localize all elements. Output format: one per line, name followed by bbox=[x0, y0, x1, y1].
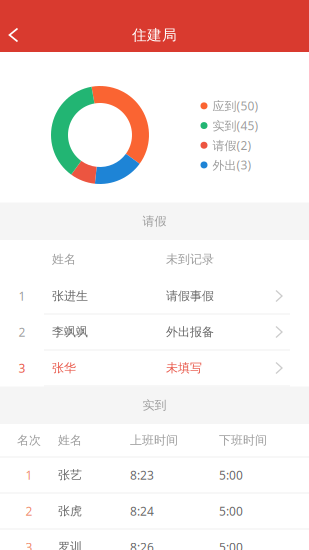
staticText: 请假(2) bbox=[212, 137, 251, 153]
staticText: 名次 bbox=[17, 433, 41, 448]
staticText: 下班时间 bbox=[219, 433, 267, 448]
staticText: 外出报备 bbox=[166, 325, 214, 339]
button[interactable]: 3 bbox=[0, 350, 309, 385]
staticText: 未填写 bbox=[166, 361, 202, 375]
staticText: 2 bbox=[18, 324, 25, 340]
staticText: 5:00 bbox=[219, 467, 243, 483]
staticText: 张进生 bbox=[52, 289, 88, 303]
staticText: 5:00 bbox=[219, 539, 243, 550]
staticText: 未到记录 bbox=[166, 252, 214, 267]
staticText: 应到(50) bbox=[212, 98, 258, 114]
button[interactable]: Back bbox=[0, 18, 27, 52]
staticText: 姓名 bbox=[58, 433, 82, 448]
staticText: 8:24 bbox=[130, 503, 154, 519]
staticText: 姓名 bbox=[52, 252, 76, 267]
staticText: 李飒飒 bbox=[52, 325, 88, 339]
staticText: 8:23 bbox=[130, 467, 154, 483]
staticText: 1 bbox=[25, 467, 32, 483]
staticText: 3 bbox=[25, 539, 32, 550]
button[interactable]: 1 bbox=[0, 278, 309, 313]
staticText: 张虎 bbox=[58, 504, 82, 518]
staticText: 罗训 bbox=[58, 540, 82, 550]
staticText: 2 bbox=[25, 503, 32, 519]
staticText: 张艺 bbox=[58, 468, 82, 482]
staticText: 3 bbox=[18, 360, 25, 376]
staticText: 1 bbox=[18, 288, 25, 304]
staticText: 8:26 bbox=[130, 539, 154, 550]
staticText: 上班时间 bbox=[130, 433, 178, 448]
staticText: 5:00 bbox=[219, 503, 243, 519]
staticText: 请假事假 bbox=[166, 289, 214, 303]
staticText: 实到(45) bbox=[212, 118, 258, 133]
staticText: 住建局 bbox=[132, 26, 177, 44]
button[interactable]: 2 bbox=[0, 314, 309, 349]
staticText: 张华 bbox=[52, 361, 76, 375]
staticText: 外出(3) bbox=[212, 157, 251, 173]
staticText: 请假 bbox=[142, 214, 166, 229]
staticText: 实到 bbox=[142, 398, 166, 413]
